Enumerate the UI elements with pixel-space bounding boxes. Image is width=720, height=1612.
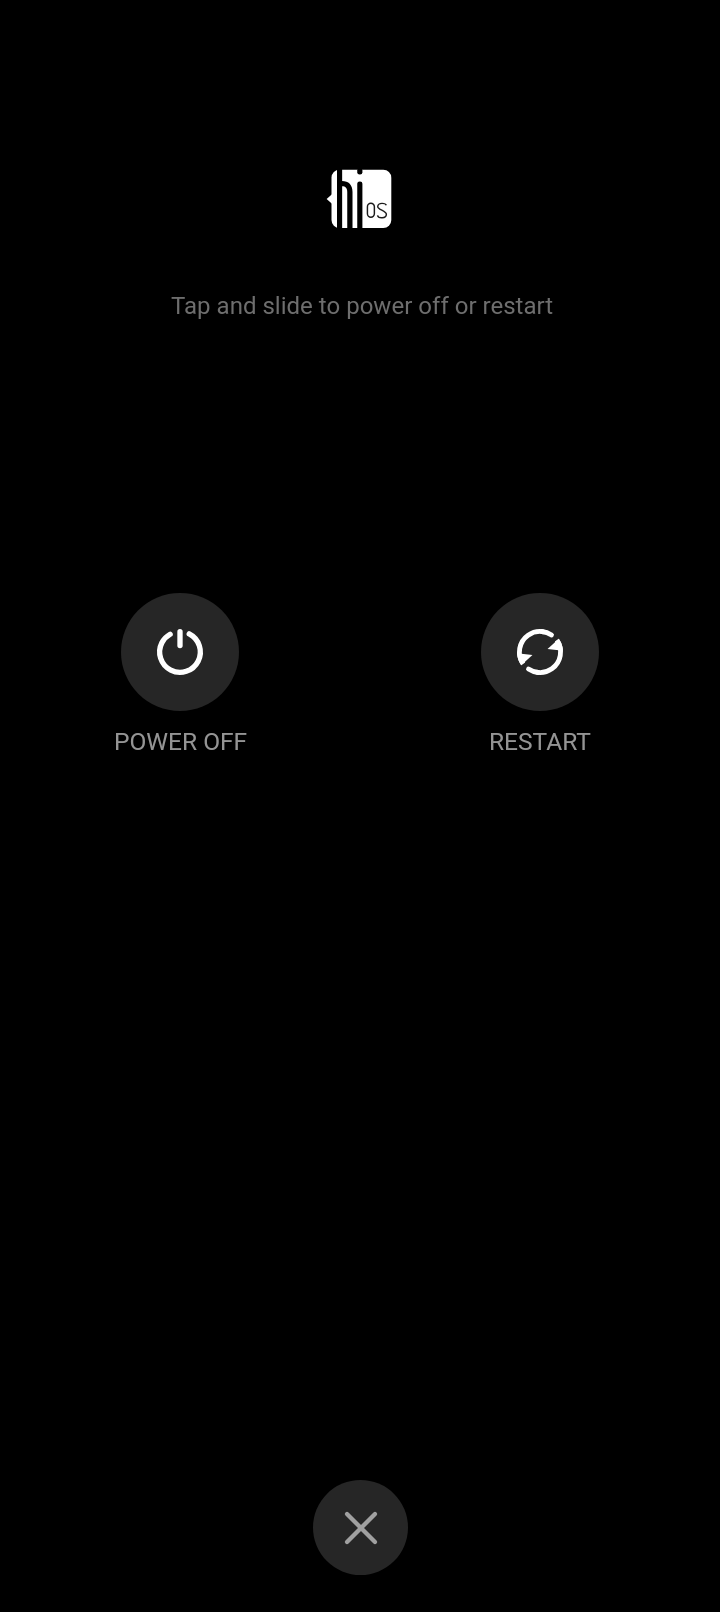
button[interactable]: Close bbox=[313, 1480, 408, 1575]
other: HiOS bbox=[324, 167, 394, 231]
button[interactable]: POWER OFF bbox=[60, 593, 300, 757]
staticText: POWER OFF bbox=[114, 727, 248, 756]
staticText: Tap and slide to power off or restart bbox=[171, 292, 554, 320]
staticText: RESTART bbox=[489, 727, 591, 756]
button[interactable]: RESTART bbox=[419, 593, 659, 757]
